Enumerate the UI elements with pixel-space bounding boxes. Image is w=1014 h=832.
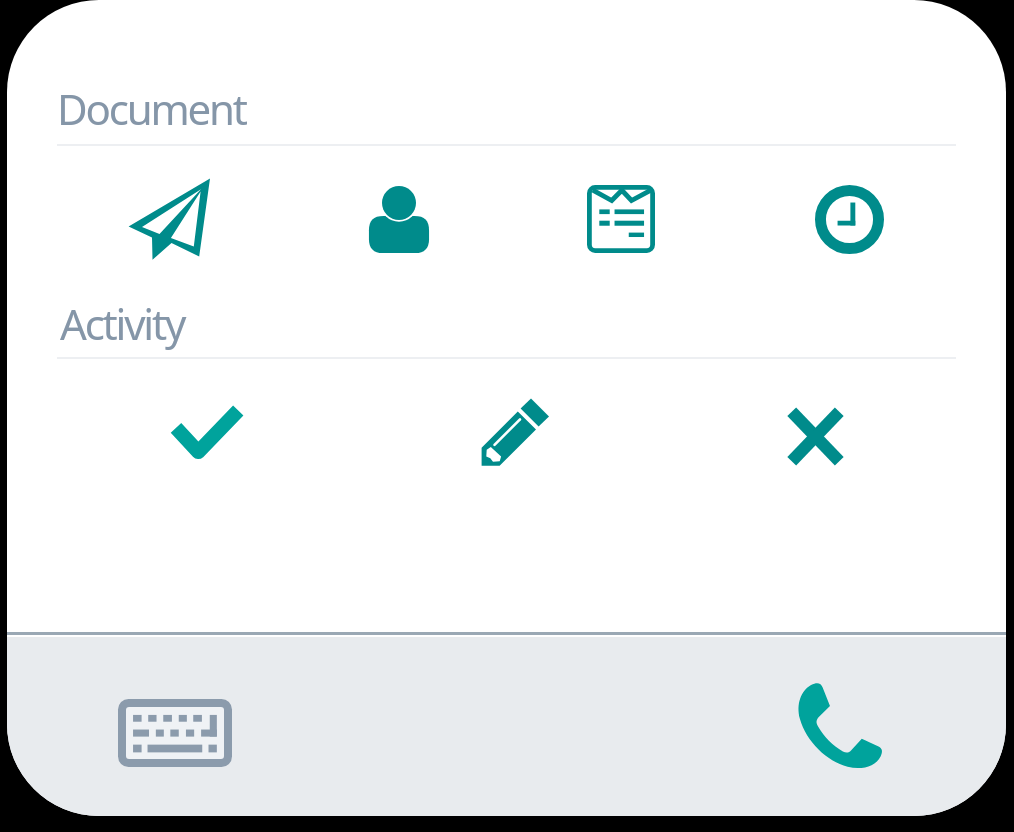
button[interactable]: Call [796,681,882,769]
staticText: Document [57,80,246,137]
button[interactable]: Send [120,164,220,272]
button[interactable]: Edit [472,386,558,480]
button[interactable]: Contact [357,173,441,265]
button[interactable]: Approve [160,379,256,483]
button[interactable]: Reject [780,397,851,476]
button[interactable]: Invoice [579,173,663,265]
button[interactable]: Time [807,173,892,266]
button[interactable]: Keyboard [118,699,232,767]
staticText: Activity [60,295,185,352]
